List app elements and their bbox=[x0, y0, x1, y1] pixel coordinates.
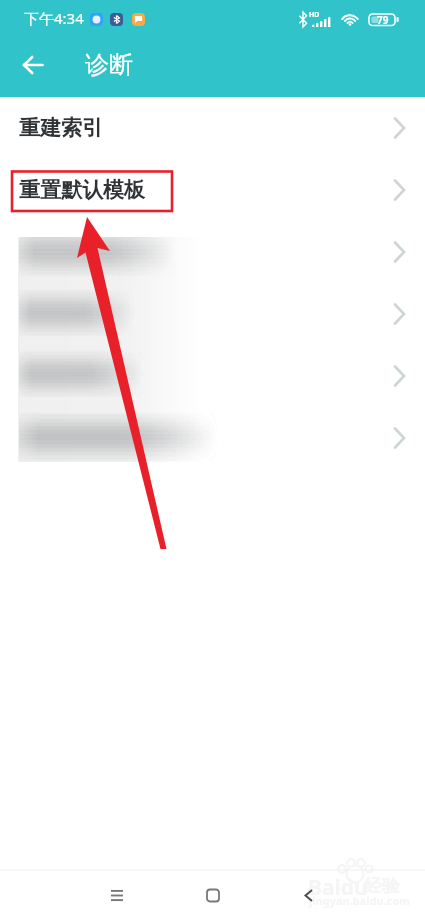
button[interactable] bbox=[0, 407, 425, 469]
button[interactable]: Back bbox=[13, 45, 53, 85]
button[interactable] bbox=[0, 283, 425, 345]
button[interactable]: 重置默认模板 bbox=[0, 159, 425, 221]
button[interactable]: Recent apps bbox=[97, 875, 137, 915]
staticText: 重建索引 bbox=[19, 115, 103, 141]
staticText: jingyan.baidu.com bbox=[309, 893, 411, 908]
button[interactable]: 重建索引 bbox=[0, 97, 425, 159]
button[interactable]: Home bbox=[193, 875, 233, 915]
staticText: 重置默认模板 bbox=[19, 177, 145, 203]
staticText: Baidu bbox=[308, 873, 368, 902]
staticText: 诊断 bbox=[85, 50, 133, 80]
staticText: 经验 bbox=[364, 875, 400, 898]
button[interactable]: Back bbox=[289, 875, 329, 915]
button[interactable] bbox=[0, 221, 425, 283]
staticText: 下午4:34 bbox=[24, 8, 84, 28]
button[interactable] bbox=[0, 345, 425, 407]
staticText: HD bbox=[309, 10, 320, 20]
staticText: 79 bbox=[377, 13, 389, 27]
